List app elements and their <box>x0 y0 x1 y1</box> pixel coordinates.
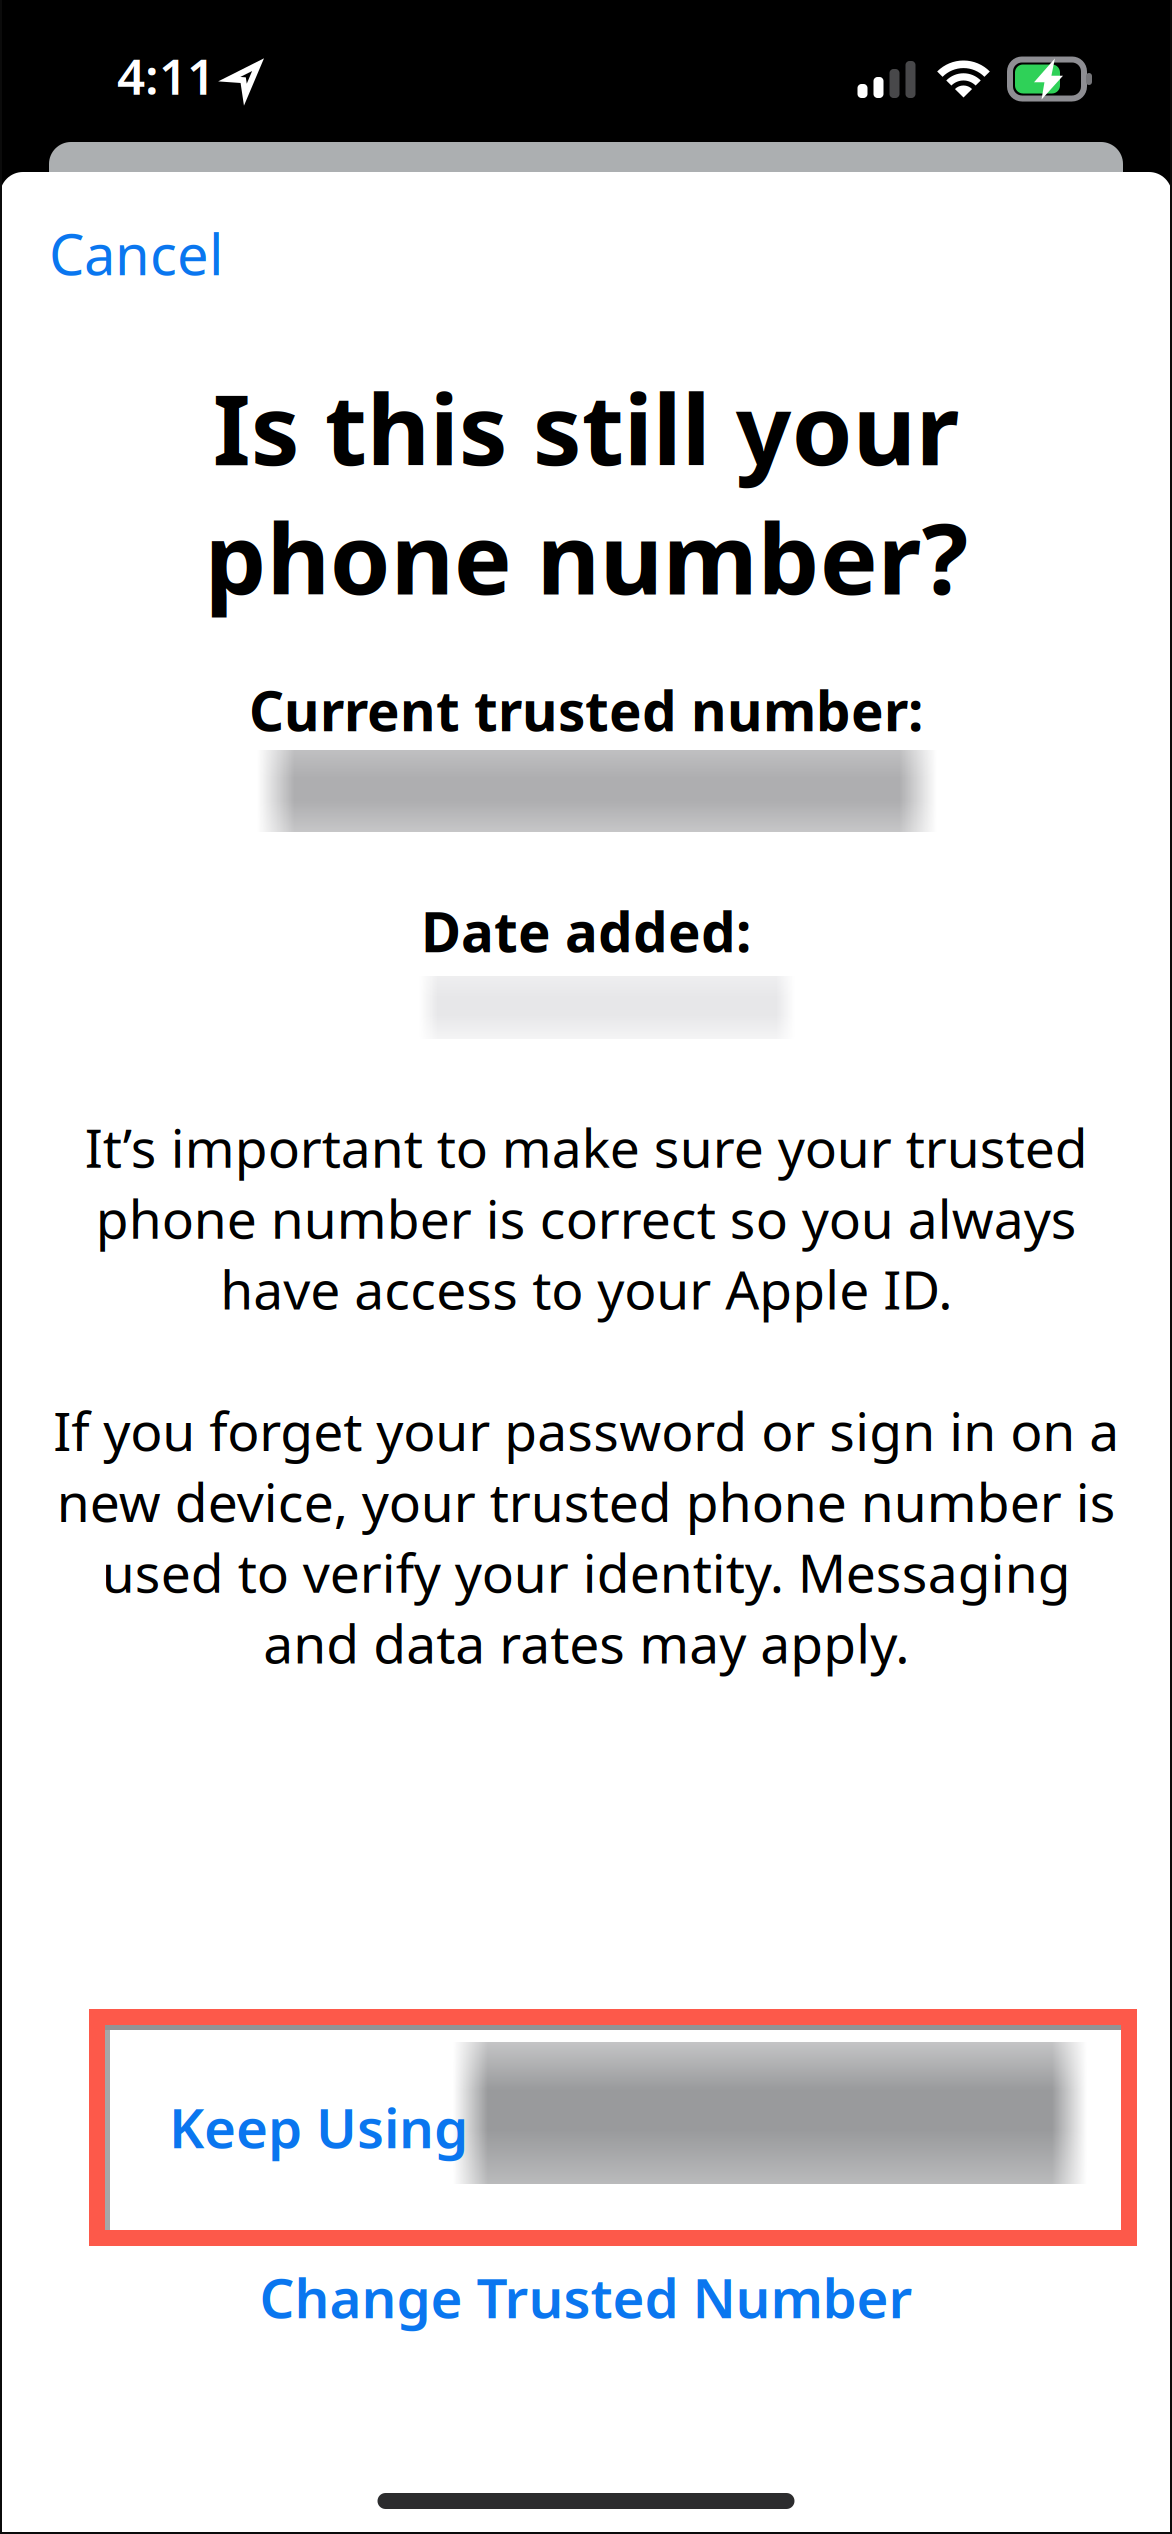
staticText: 4:11 <box>117 43 215 108</box>
staticText: Is this still your phone number? <box>204 363 967 621</box>
button[interactable]: Keep Using <box>0 2009 1172 2246</box>
staticText: Keep Using <box>169 2091 468 2163</box>
staticText: It’s important to make sure your trusted… <box>53 1112 1119 1678</box>
staticText: Cancel <box>49 216 223 291</box>
button[interactable]: Cancel <box>0 197 258 310</box>
button[interactable]: Change Trusted Number <box>219 2249 952 2345</box>
staticText: Change Trusted Number <box>259 2261 912 2333</box>
staticText: Date added: <box>421 895 751 967</box>
staticText: Current trusted number: <box>249 674 923 746</box>
